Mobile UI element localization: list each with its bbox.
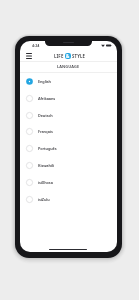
staticText: Kiswahili [38, 163, 54, 168]
staticText: Deutsch [38, 113, 53, 118]
button[interactable]: Deutsch [20, 107, 117, 124]
staticText: Português [38, 146, 57, 151]
button[interactable]: isiZulu [20, 191, 117, 208]
staticText: isiXhosa [38, 180, 53, 185]
button[interactable]: Afrikaans [20, 90, 117, 107]
staticText: isiZulu [38, 197, 50, 202]
button[interactable]: Open navigation menu [24, 51, 33, 60]
button[interactable]: Português [20, 140, 117, 157]
button[interactable]: Français [20, 123, 117, 140]
staticText: Français [38, 129, 53, 134]
staticText: & [66, 53, 70, 59]
button[interactable]: Kiswahili [20, 157, 117, 174]
button[interactable]: English [20, 73, 117, 90]
staticText: English [38, 79, 51, 84]
button[interactable]: LIFE [54, 53, 86, 59]
button[interactable]: isiXhosa [20, 174, 117, 191]
staticText: LIFE [54, 53, 64, 59]
staticText: 4:24 [32, 43, 40, 48]
staticText: STYLE [72, 53, 86, 59]
staticText: LANGUAGE [57, 64, 80, 69]
staticText: Afrikaans [38, 96, 56, 101]
